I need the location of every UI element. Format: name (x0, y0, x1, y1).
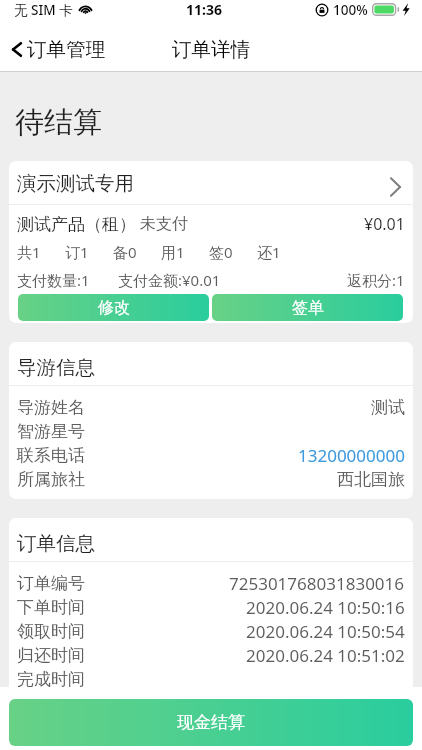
staticText: 13200000000 (298, 444, 405, 467)
staticText: 用1 (161, 242, 185, 262)
staticText: 完成时间 (17, 669, 85, 690)
staticText: 备0 (113, 242, 137, 262)
staticText: 现金结算 (177, 712, 245, 733)
staticText: 返积分:1 (347, 270, 405, 290)
other: 查看详情 (390, 177, 401, 197)
staticText: 2020.06.24 10:50:16 (246, 596, 405, 619)
staticText: 无 SIM 卡 (14, 1, 73, 19)
staticText: 西北国旅 (337, 469, 405, 490)
staticText: 还1 (257, 242, 281, 262)
staticText: 签0 (209, 242, 233, 262)
staticText: 归还时间 (17, 645, 85, 666)
staticText: 联系电话 (17, 445, 85, 466)
staticText: 测试 (371, 397, 405, 418)
staticText: 待结算 (15, 104, 102, 141)
staticText: 725301768031830016 (229, 572, 405, 595)
staticText: 2020.06.24 10:51:02 (246, 644, 405, 667)
staticText: 领取时间 (17, 621, 85, 642)
button[interactable]: 修改 (18, 294, 209, 321)
staticText: 2020.06.24 10:50:54 (246, 620, 405, 643)
staticText: 所属旅社 (17, 469, 85, 490)
staticText: 支付金额:¥0.01 (118, 270, 221, 290)
button[interactable]: 现金结算 (9, 699, 413, 746)
staticText: 支付数量:1 (17, 270, 90, 290)
staticText: 订单详情 (172, 37, 250, 62)
staticText: 导游姓名 (17, 397, 85, 418)
staticText: 共1 (17, 242, 41, 262)
staticText: 测试产品（租） (17, 214, 136, 235)
staticText: 11:36 (186, 0, 222, 19)
button[interactable]: 演示测试专用 (9, 161, 413, 204)
staticText: 未支付 (140, 214, 188, 234)
staticText: 下单时间 (17, 597, 85, 618)
staticText: 订单信息 (17, 531, 95, 556)
staticText: 订1 (65, 242, 89, 262)
staticText: 100% (333, 1, 368, 19)
staticText: 订单编号 (17, 573, 85, 594)
staticText: ¥0.01 (364, 213, 405, 235)
staticText: 智游星号 (17, 421, 85, 442)
staticText: 导游信息 (17, 355, 95, 380)
button[interactable]: 签单 (212, 294, 403, 321)
staticText: 签单 (292, 298, 324, 318)
staticText: 修改 (98, 298, 130, 318)
staticText: 演示测试专用 (17, 171, 134, 196)
staticText: 订单管理 (27, 37, 105, 62)
button[interactable]: 订单管理 (0, 31, 115, 68)
